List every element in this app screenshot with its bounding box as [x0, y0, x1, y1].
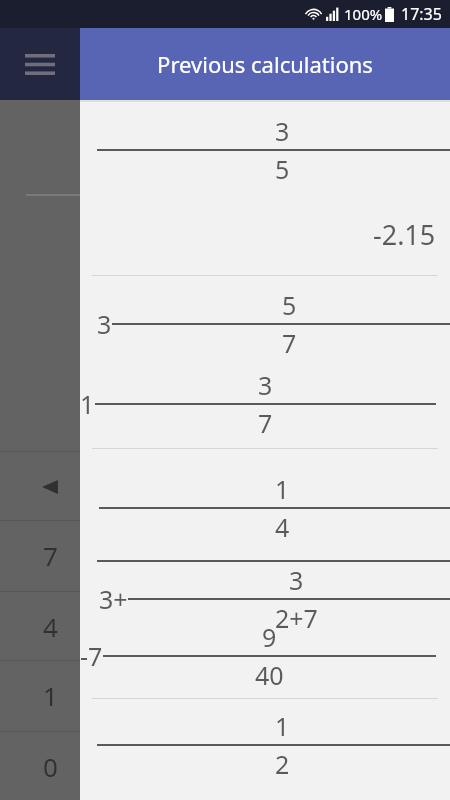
- staticText: 2+7: [275, 601, 318, 635]
- button[interactable]: 7: [0, 521, 80, 590]
- button[interactable]: 4: [0, 592, 80, 661]
- staticText: Previous calculations: [157, 49, 373, 79]
- staticText: 7: [282, 326, 297, 360]
- button[interactable]: 1: [80, 699, 450, 800]
- staticText: 0: [43, 749, 58, 784]
- staticText: 17:35: [401, 3, 442, 25]
- staticText: 3: [275, 114, 290, 148]
- staticText: 2: [275, 747, 290, 781]
- staticText: 1: [80, 387, 95, 421]
- staticText: 7: [43, 538, 58, 573]
- button[interactable]: 3: [80, 102, 450, 275]
- staticText: 3: [258, 368, 273, 402]
- button[interactable]: 1: [80, 449, 450, 698]
- staticText: 7: [258, 406, 273, 440]
- button[interactable]: 0: [0, 732, 80, 800]
- staticText: -7: [80, 639, 103, 673]
- staticText: 3: [97, 307, 112, 341]
- staticText: 3: [289, 563, 304, 597]
- button[interactable]: 1: [0, 661, 80, 730]
- staticText: 1: [275, 709, 290, 743]
- staticText: -2.15: [373, 216, 436, 253]
- staticText: 3+: [99, 582, 128, 616]
- button[interactable]: Open navigation drawer: [0, 28, 80, 100]
- staticText: 5: [275, 152, 290, 186]
- staticText: 5: [282, 288, 297, 322]
- button[interactable]: Backspace: [0, 452, 80, 521]
- staticText: 4: [43, 609, 58, 644]
- staticText: 1: [275, 472, 290, 506]
- staticText: 1: [43, 678, 58, 713]
- button[interactable]: 3: [80, 276, 450, 448]
- staticText: 9: [262, 620, 277, 654]
- staticText: 100%: [344, 4, 383, 24]
- staticText: 4: [275, 510, 290, 544]
- staticText: 40: [255, 658, 284, 692]
